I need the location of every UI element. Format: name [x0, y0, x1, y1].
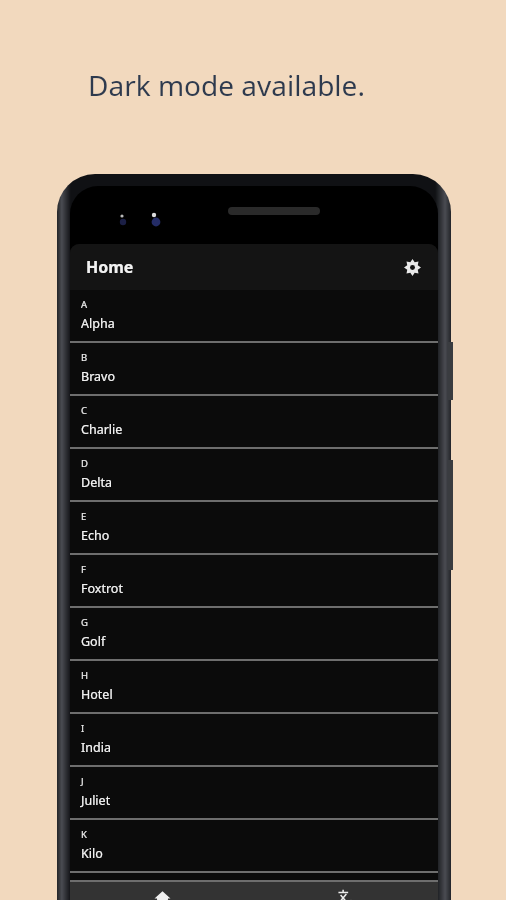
staticText: Kilo — [81, 845, 103, 862]
button[interactable]: L — [70, 873, 438, 882]
staticText: Foxtrot — [81, 580, 123, 597]
staticText: Alpha — [81, 315, 115, 332]
button[interactable]: G — [70, 608, 438, 661]
button[interactable]: B — [70, 343, 438, 396]
button[interactable]: F — [70, 555, 438, 608]
staticText: D — [81, 457, 88, 470]
button[interactable]: K — [70, 820, 438, 873]
staticText: Home — [86, 256, 134, 278]
button[interactable]: Settings — [392, 247, 432, 287]
staticText: Delta — [81, 474, 112, 491]
staticText: G — [81, 616, 88, 629]
button[interactable]: E — [70, 502, 438, 555]
button[interactable]: I — [70, 714, 438, 767]
staticText: J — [81, 775, 84, 788]
staticText: A — [81, 298, 88, 311]
staticText: H — [81, 669, 89, 682]
staticText: Golf — [81, 633, 106, 650]
button[interactable]: Home — [70, 882, 254, 900]
button[interactable]: D — [70, 449, 438, 502]
staticText: F — [81, 563, 86, 576]
staticText: Juliet — [81, 792, 111, 809]
staticText: Dark mode available. — [88, 66, 365, 104]
button[interactable]: J — [70, 767, 438, 820]
staticText: E — [81, 510, 87, 523]
staticText: Echo — [81, 527, 110, 544]
staticText: India — [81, 739, 111, 756]
staticText: Hotel — [81, 686, 113, 703]
staticText: C — [81, 404, 88, 417]
staticText: Bravo — [81, 368, 115, 385]
staticText: I — [81, 722, 85, 735]
button[interactable]: H — [70, 661, 438, 714]
button[interactable]: C — [70, 396, 438, 449]
staticText: K — [81, 828, 87, 841]
staticText: Charlie — [81, 421, 123, 438]
staticText: B — [81, 351, 88, 364]
button[interactable]: A — [70, 290, 438, 343]
button[interactable]: Translate — [254, 882, 438, 900]
